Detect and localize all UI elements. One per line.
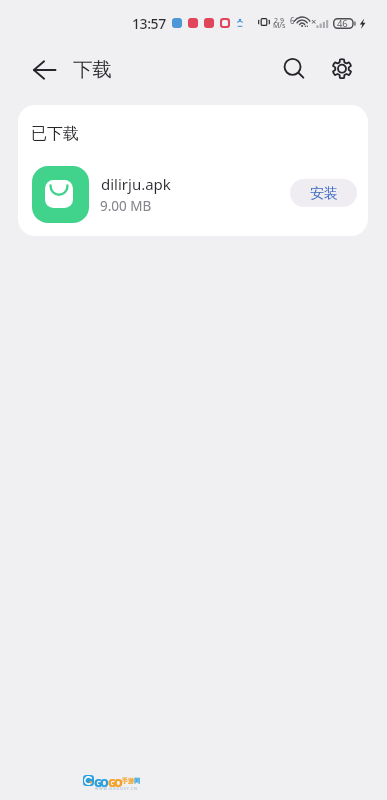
button[interactable]: Back — [30, 55, 60, 85]
staticText: 13:57 — [132, 14, 166, 33]
staticText: 46 — [337, 17, 348, 30]
staticText: 6 — [290, 15, 295, 26]
staticText: 9.00 MB — [100, 197, 152, 215]
staticText: 安装 — [310, 185, 338, 203]
staticText: 已下载 — [31, 124, 79, 144]
staticText: 下载 — [73, 57, 112, 82]
staticText: M/s — [273, 21, 286, 31]
staticText: GO — [94, 775, 107, 790]
button[interactable]: Search — [278, 55, 308, 85]
staticText: 手游 — [122, 777, 134, 785]
staticText: dilirju.apk — [101, 174, 171, 194]
button[interactable]: Settings — [327, 54, 357, 84]
button[interactable]: 安装 — [290, 179, 357, 207]
staticText: 网 — [134, 777, 140, 785]
staticText: GO — [108, 775, 121, 790]
staticText: 2.9 — [274, 16, 284, 26]
staticText: WWW.GOGOXY.CN — [95, 786, 138, 791]
staticText: × — [311, 15, 317, 28]
